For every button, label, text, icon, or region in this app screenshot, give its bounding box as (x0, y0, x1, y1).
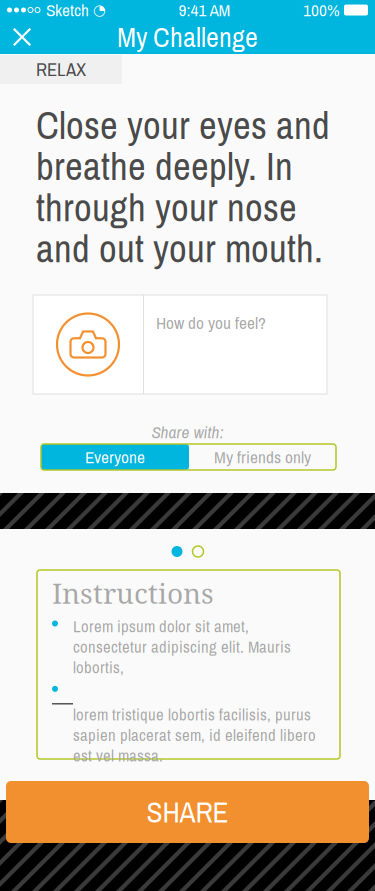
button[interactable]: Close (0, 20, 44, 54)
staticText: Everyone (85, 445, 145, 469)
button[interactable]: SHARE (6, 781, 369, 843)
staticText: 9:41 AM (178, 0, 230, 22)
button[interactable]: My friends only (189, 444, 336, 470)
button[interactable]: Everyone (41, 444, 189, 470)
staticText: Close your eyes and breathe deeply. In t… (36, 99, 330, 274)
staticText: SHARE (146, 792, 228, 832)
staticText: lorem tristique lobortis facilisis, puru… (73, 703, 316, 767)
staticText: 100% (303, 0, 340, 22)
staticText: ◔ (93, 1, 106, 19)
staticText: Sketch (46, 0, 89, 22)
staticText: Instructions (52, 574, 214, 612)
staticText: Share with: (151, 420, 223, 444)
staticText: RELAX (36, 57, 86, 82)
staticText: My Challenge (117, 18, 258, 56)
staticText: How do you feel? (156, 311, 266, 334)
staticText: Lorem ipsum dolor sit amet, consectetur … (73, 615, 291, 678)
staticText: My friends only (214, 445, 311, 469)
